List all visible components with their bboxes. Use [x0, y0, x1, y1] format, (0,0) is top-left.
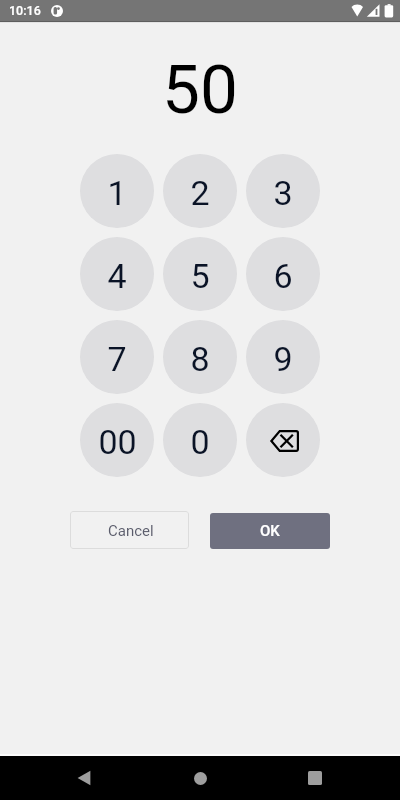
staticText: 6: [273, 256, 293, 296]
button[interactable]: OK: [210, 513, 330, 549]
staticText: OK: [260, 522, 280, 540]
button[interactable]: Backspace: [246, 403, 320, 477]
staticText: 4: [107, 256, 127, 296]
staticText: 10:16: [9, 3, 41, 18]
button[interactable]: 3: [246, 154, 320, 228]
button[interactable]: Recent apps: [301, 764, 329, 792]
staticText: Cancel: [108, 522, 154, 540]
button[interactable]: 4: [80, 237, 154, 311]
staticText: 2: [190, 173, 210, 213]
button[interactable]: 9: [246, 320, 320, 394]
button[interactable]: 2: [163, 154, 237, 228]
staticText: 9: [273, 339, 293, 379]
button[interactable]: 1: [80, 154, 154, 228]
button[interactable]: Back: [70, 764, 98, 792]
button[interactable]: 6: [246, 237, 320, 311]
button[interactable]: 8: [163, 320, 237, 394]
staticText: 7: [107, 339, 127, 379]
other: Backspace: [270, 430, 299, 452]
staticText: 00: [98, 422, 137, 462]
button[interactable]: Cancel: [70, 511, 189, 549]
staticText: 0: [190, 422, 210, 462]
staticText: 8: [190, 339, 210, 379]
button[interactable]: 00: [80, 403, 154, 477]
staticText: 1: [107, 173, 127, 213]
staticText: 50: [162, 50, 238, 129]
button[interactable]: Home: [186, 764, 214, 792]
staticText: 5: [190, 256, 210, 296]
button[interactable]: 7: [80, 320, 154, 394]
button[interactable]: 0: [163, 403, 237, 477]
staticText: 3: [273, 173, 293, 213]
button[interactable]: 5: [163, 237, 237, 311]
